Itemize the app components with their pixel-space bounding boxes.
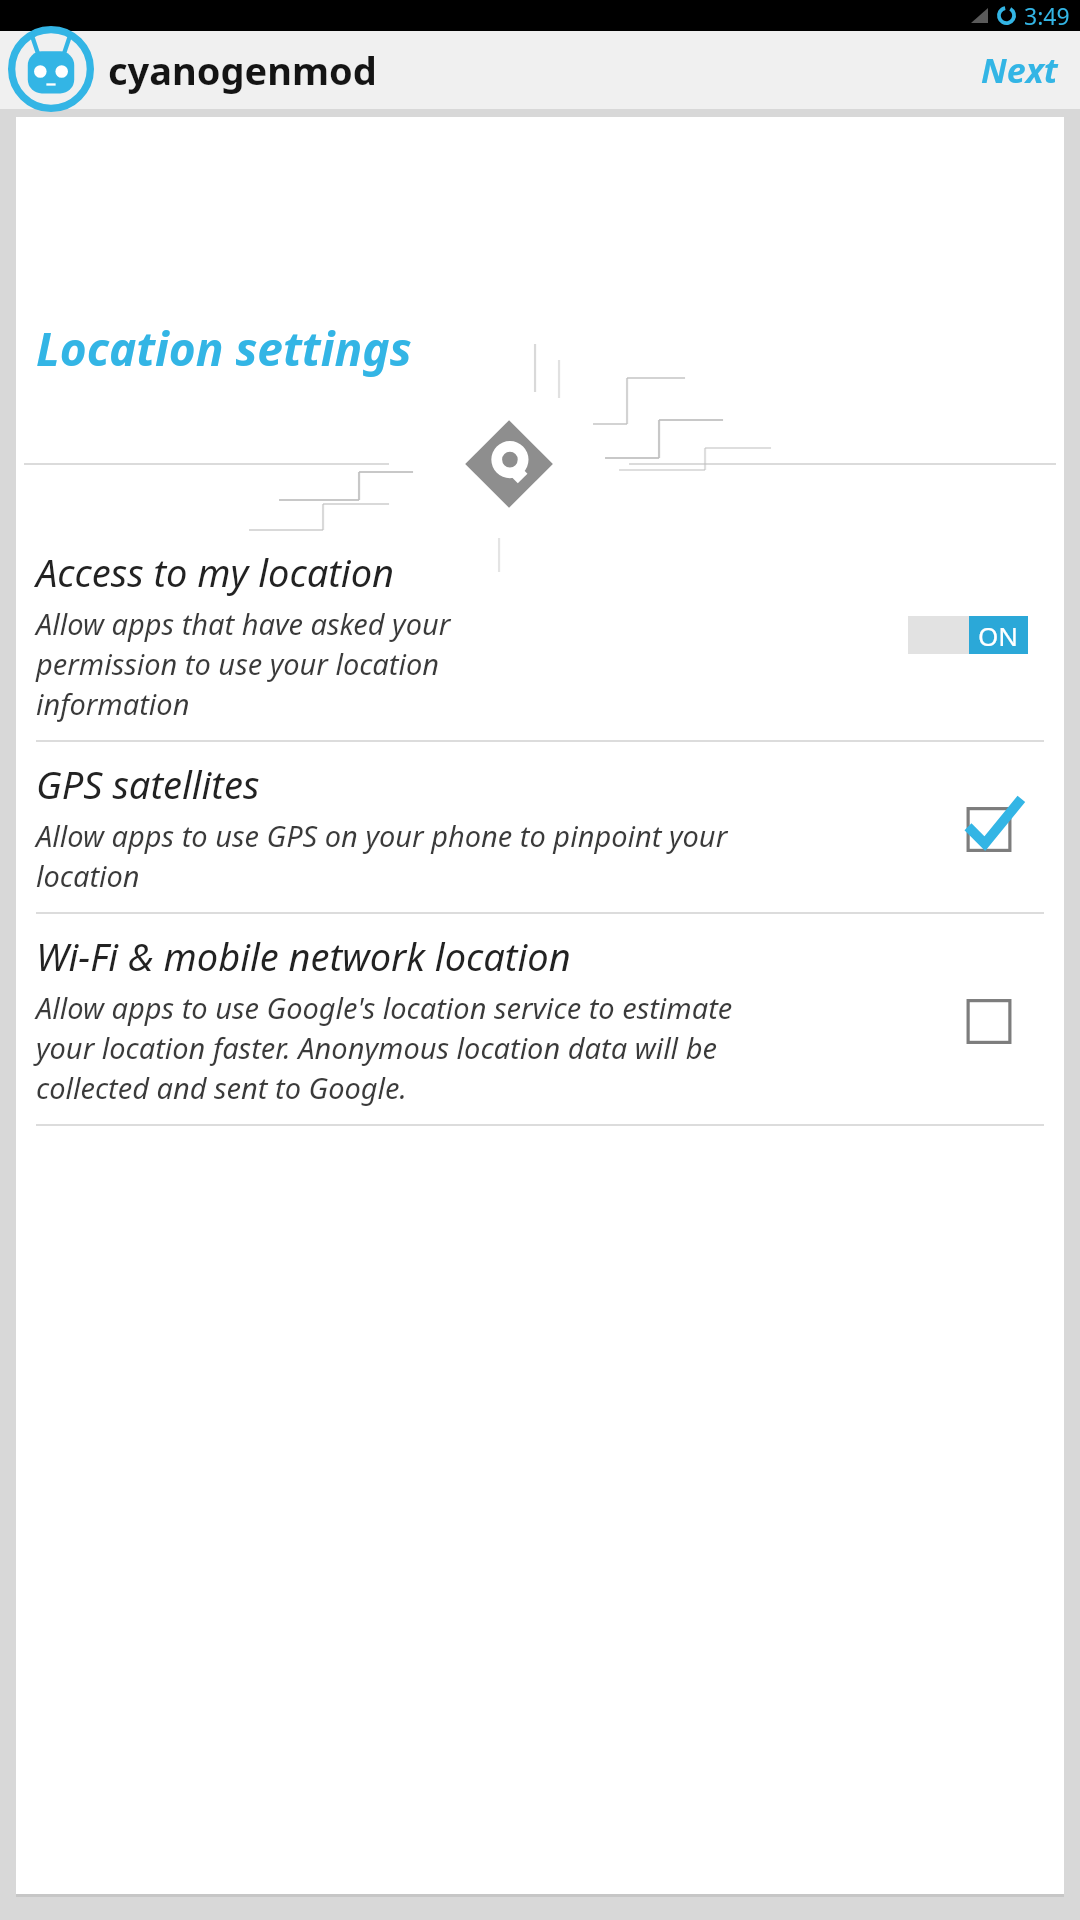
staticText: Allow apps to use GPS on your phone to p… [36, 816, 812, 896]
button[interactable]: Access to my location [16, 530, 1064, 740]
staticText: Location settings [36, 317, 412, 380]
staticText: Access to my location [36, 546, 395, 598]
staticText: ON [978, 618, 1019, 653]
button[interactable]: Unchecked [960, 990, 1018, 1048]
other: CyanogenMod [8, 26, 94, 112]
staticText: GPS satellites [36, 758, 260, 810]
button[interactable]: Access to my location, on [908, 616, 1028, 654]
staticText: Wi-Fi & mobile network location [36, 930, 571, 982]
staticText: Allow apps to use Google's location serv… [36, 988, 757, 1108]
button[interactable]: GPS satellites [16, 742, 1064, 912]
button[interactable]: Next [959, 35, 1080, 105]
staticText: Allow apps that have asked your permissi… [36, 604, 559, 724]
staticText: cyanogenmod [108, 44, 377, 96]
staticText: Next [981, 47, 1058, 93]
button[interactable]: Checked [960, 798, 1018, 856]
button[interactable]: Wi-Fi & mobile network location [16, 914, 1064, 1124]
staticText: 3:49 [1024, 0, 1070, 31]
